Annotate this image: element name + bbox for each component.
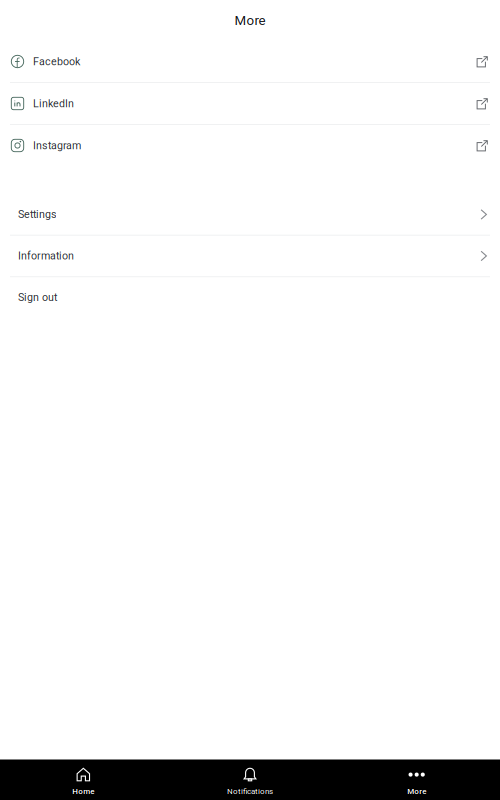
staticText: Sign out [18,291,57,304]
staticText: Notifications [227,786,273,796]
staticText: Facebook [33,55,80,68]
button[interactable]: Notifications [167,759,333,800]
button[interactable]: Facebook [0,41,500,82]
button[interactable]: Sign out [0,277,500,318]
button[interactable]: Home [0,759,167,800]
staticText: LinkedIn [33,97,74,110]
staticText: Home [72,786,94,796]
button[interactable]: More [333,759,500,800]
button[interactable]: Information [0,236,500,276]
staticText: More [234,13,265,28]
staticText: Instagram [33,139,81,152]
button[interactable]: Instagram [0,125,500,166]
staticText: More [407,786,426,796]
staticText: Settings [18,208,57,221]
staticText: Information [18,250,74,262]
button[interactable]: LinkedIn [0,83,500,124]
button[interactable]: Settings [0,194,500,235]
